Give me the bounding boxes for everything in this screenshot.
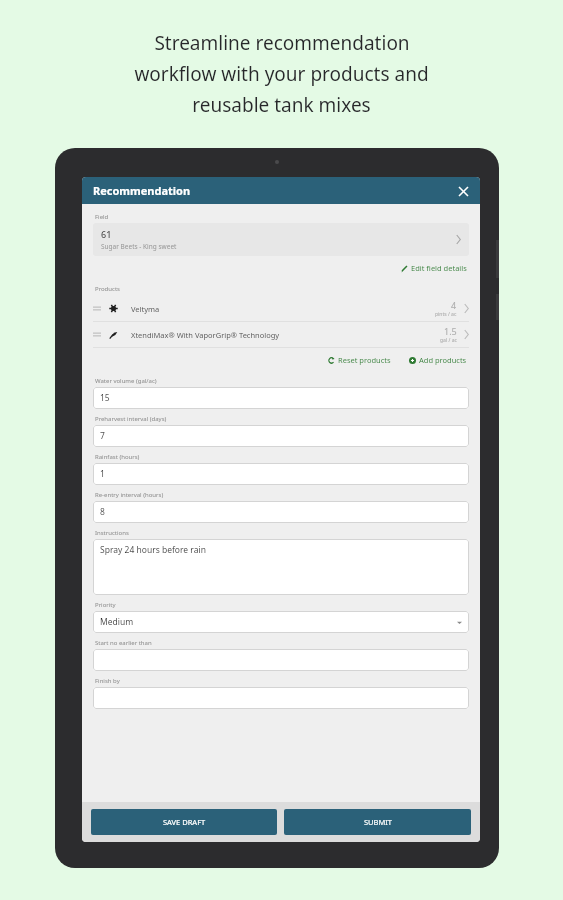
staticText: Recommendation bbox=[93, 183, 191, 198]
button[interactable]: Edit field details bbox=[399, 261, 469, 275]
button[interactable]: XtendiMax® With VaporGrip® Technology bbox=[93, 322, 469, 347]
staticText: Veltyma bbox=[131, 304, 435, 314]
staticText: 61 bbox=[101, 228, 112, 240]
staticText: gal / ac bbox=[440, 337, 457, 344]
staticText: Add products bbox=[419, 355, 467, 365]
staticText: Water volume (gal/ac) bbox=[95, 377, 157, 385]
staticText: 1 bbox=[100, 468, 462, 480]
button[interactable]: Reset products bbox=[326, 353, 393, 367]
staticText: SUBMIT bbox=[364, 817, 392, 827]
button[interactable]: SAVE DRAFT bbox=[91, 809, 277, 835]
staticText: Medium bbox=[100, 616, 457, 628]
staticText: Re-entry interval (hours) bbox=[95, 491, 164, 499]
staticText: Start no earlier than bbox=[95, 639, 152, 647]
button[interactable]: SUBMIT bbox=[284, 809, 471, 835]
staticText: XtendiMax® With VaporGrip® Technology bbox=[131, 330, 440, 340]
button[interactable]: Add products bbox=[407, 353, 469, 367]
staticText: Streamline recommendation bbox=[154, 30, 410, 56]
button[interactable]: 61 bbox=[93, 223, 469, 256]
staticText: pints / ac bbox=[435, 311, 457, 318]
staticText: 1.5 bbox=[444, 325, 457, 337]
button[interactable] bbox=[93, 649, 469, 671]
staticText: workflow with your products and bbox=[134, 61, 429, 87]
staticText: Rainfast (hours) bbox=[95, 453, 140, 461]
button[interactable]: Spray 24 hours before rain bbox=[93, 539, 469, 595]
button[interactable]: 1 bbox=[93, 463, 469, 485]
staticText: Field bbox=[95, 213, 109, 221]
staticText: Spray 24 hours before rain bbox=[100, 544, 462, 556]
staticText: Instructions bbox=[95, 529, 129, 537]
button[interactable]: Medium bbox=[93, 611, 469, 633]
staticText: Products bbox=[95, 285, 120, 293]
staticText: reusable tank mixes bbox=[192, 92, 371, 118]
staticText: Finish by bbox=[95, 677, 120, 685]
staticText: 15 bbox=[100, 392, 462, 404]
button[interactable]: 8 bbox=[93, 501, 469, 523]
staticText: 7 bbox=[100, 430, 462, 442]
button[interactable]: Close bbox=[452, 180, 474, 202]
staticText: Preharvest interval (days) bbox=[95, 415, 167, 423]
staticText: 8 bbox=[100, 506, 462, 518]
staticText: Edit field details bbox=[411, 263, 467, 273]
staticText: 4 bbox=[451, 299, 457, 311]
staticText: Priority bbox=[95, 601, 116, 609]
button[interactable]: 15 bbox=[93, 387, 469, 409]
staticText: Sugar Beets - King sweet bbox=[101, 242, 177, 251]
button[interactable] bbox=[93, 687, 469, 709]
staticText: SAVE DRAFT bbox=[163, 817, 206, 827]
button[interactable]: 7 bbox=[93, 425, 469, 447]
staticText: Reset products bbox=[338, 355, 391, 365]
button[interactable]: Veltyma bbox=[93, 296, 469, 321]
